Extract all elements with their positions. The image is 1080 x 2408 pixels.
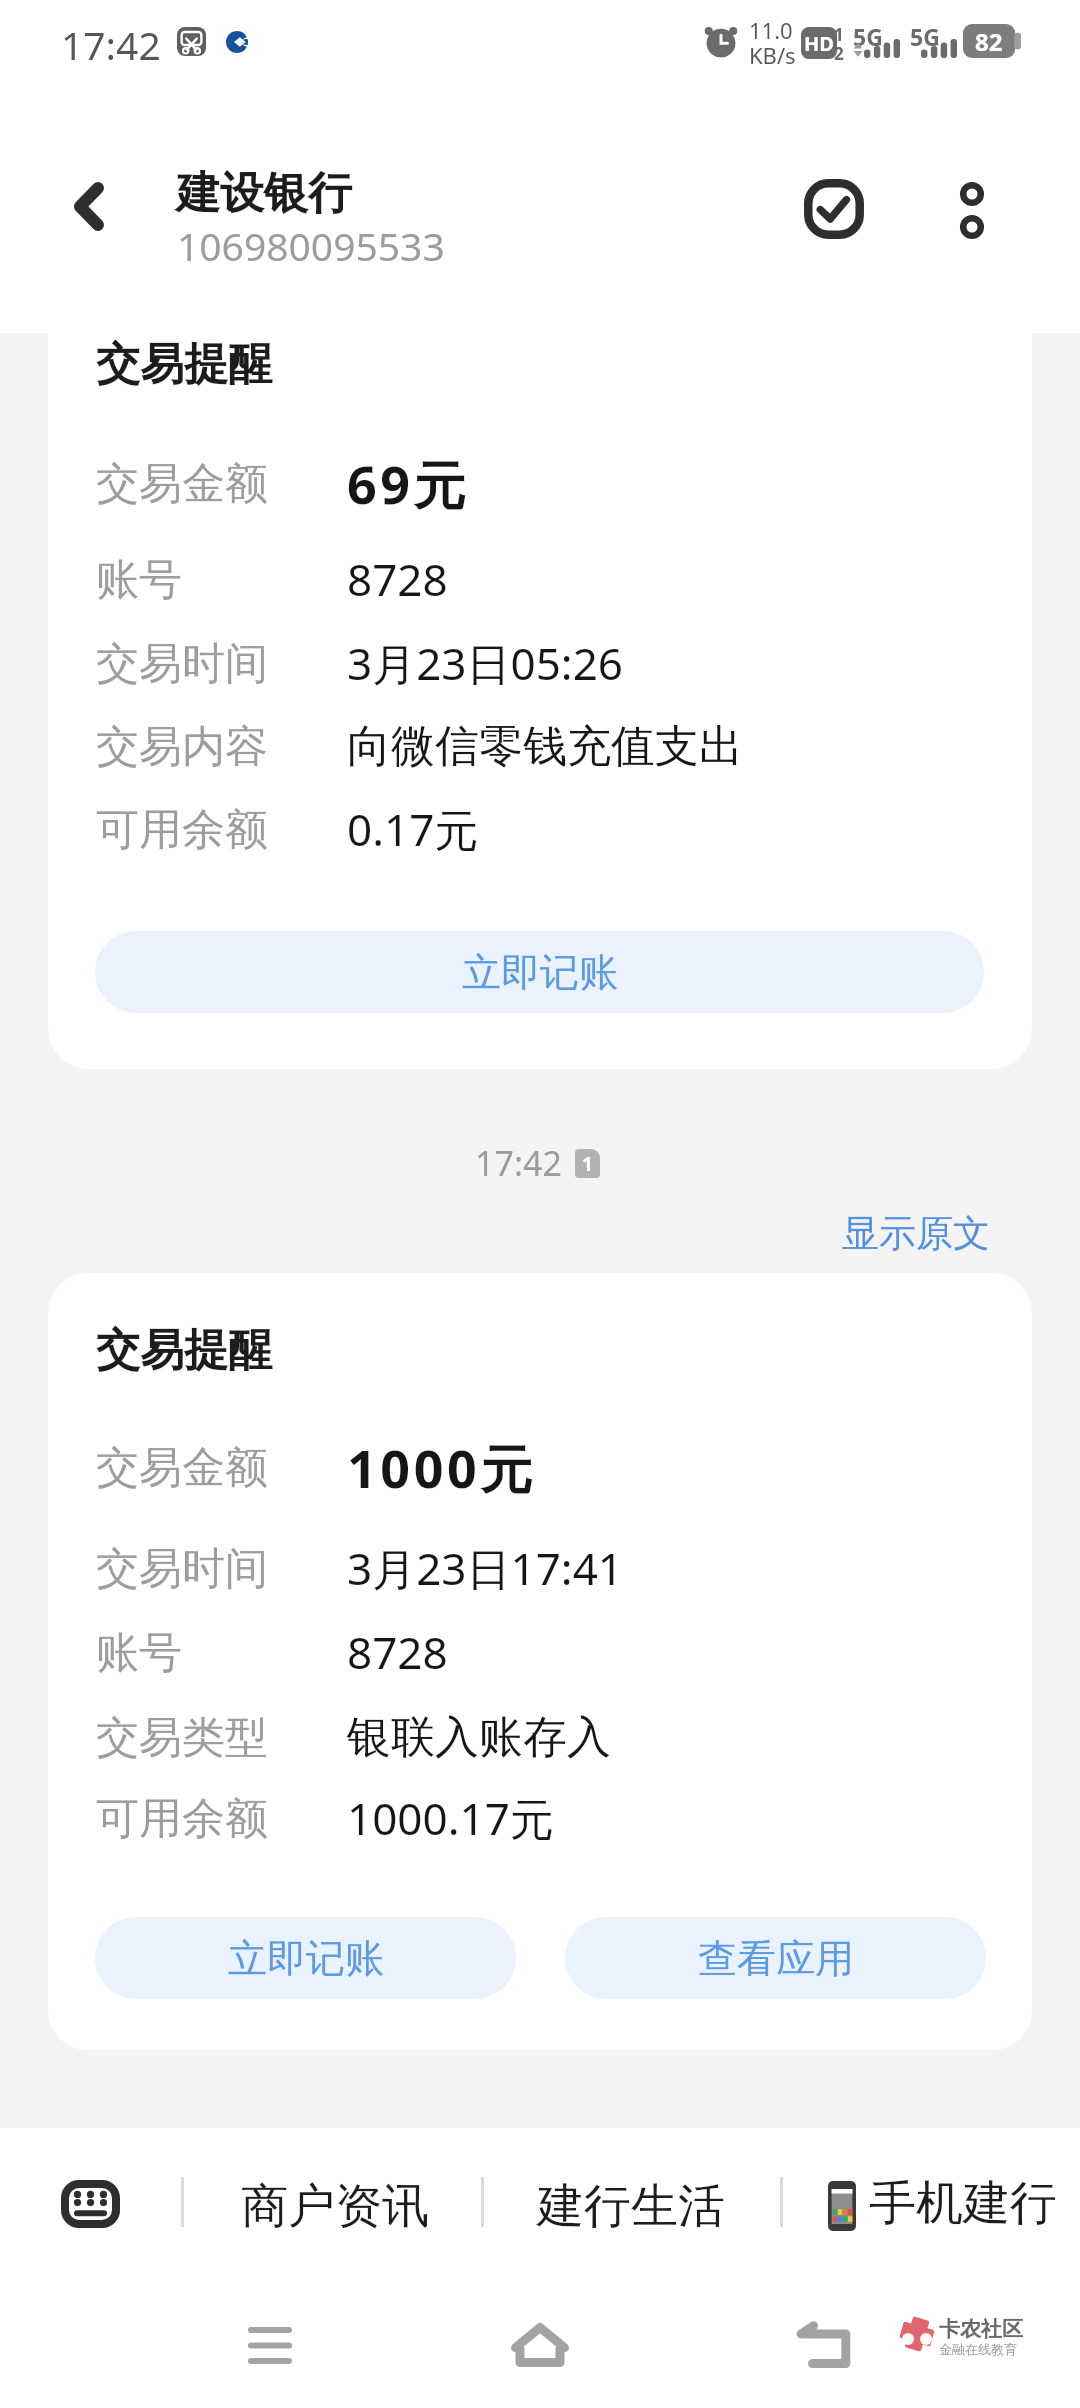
staticText: 17:42 <box>61 18 161 71</box>
staticText: 1000元 <box>347 1432 536 1503</box>
staticText: 交易提醒 <box>96 337 272 392</box>
button[interactable]: 手机建行 <box>828 2176 1057 2235</box>
staticText: 交易类型 <box>96 1711 268 1765</box>
button[interactable]: More options <box>922 160 1022 260</box>
button[interactable]: 查看应用 <box>565 1917 986 1999</box>
staticText: 3月23日17:41 <box>347 1538 623 1598</box>
staticText: 17:42 <box>475 1140 562 1186</box>
staticText: 1 <box>582 1151 593 1177</box>
button[interactable]: 立即记账 <box>95 931 984 1013</box>
button[interactable]: Back <box>772 2297 876 2393</box>
staticText: 显示原文 <box>842 1210 990 1257</box>
staticText: 1 <box>834 23 844 46</box>
staticText: 0.17元 <box>347 799 479 859</box>
staticText: 卡农社区 <box>939 2316 1023 2342</box>
staticText: 查看应用 <box>698 1934 854 1983</box>
staticText: KB/s <box>749 40 796 70</box>
button[interactable]: 建行生活 <box>497 2148 764 2253</box>
staticText: 5G <box>910 21 940 52</box>
staticText: 69元 <box>347 448 470 519</box>
button[interactable]: Back <box>39 156 139 256</box>
staticText: 建行生活 <box>537 2177 725 2236</box>
staticText: 手机建行 <box>869 2174 1057 2233</box>
staticText: 立即记账 <box>228 1934 384 1983</box>
button[interactable]: Select messages <box>784 159 884 259</box>
staticText: 账号 <box>96 1626 182 1680</box>
staticText: 交易内容 <box>96 720 268 774</box>
staticText: 金融在线教育 <box>939 2341 1017 2357</box>
staticText: 5G <box>853 21 883 52</box>
staticText: 交易金额 <box>96 1441 268 1495</box>
staticText: 1000.17元 <box>347 1788 554 1848</box>
staticText: 立即记账 <box>462 948 618 997</box>
button[interactable]: 商户资讯 <box>200 2148 470 2253</box>
staticText: 向微信零钱充值支出 <box>347 719 743 774</box>
staticText: 商户资讯 <box>241 2177 429 2236</box>
staticText: 106980095533 <box>177 219 445 272</box>
staticText: 3月23日05:26 <box>347 633 623 693</box>
staticText: 交易提醒 <box>96 1323 272 1378</box>
staticText: 建设银行 <box>176 166 352 221</box>
staticText: 交易金额 <box>96 457 268 511</box>
button[interactable]: Recent apps <box>218 2297 322 2393</box>
staticText: 银联入账存入 <box>347 1710 611 1765</box>
button[interactable]: 显示原文 <box>842 1204 990 1262</box>
button[interactable]: 立即记账 <box>95 1917 516 1999</box>
staticText: 11.0 <box>749 15 793 45</box>
staticText: 交易时间 <box>96 637 268 691</box>
button[interactable]: Home <box>488 2297 592 2393</box>
staticText: 可用余额 <box>96 1792 268 1846</box>
staticText: 8728 <box>347 1622 448 1682</box>
staticText: 82 <box>975 25 1003 58</box>
button[interactable]: Keyboard <box>56 2173 124 2235</box>
staticText: 交易时间 <box>96 1542 268 1596</box>
staticText: 可用余额 <box>96 803 268 857</box>
staticText: 8728 <box>347 549 448 609</box>
staticText: 2 <box>834 42 844 65</box>
staticText: HD <box>804 30 834 57</box>
staticText: 账号 <box>96 553 182 607</box>
